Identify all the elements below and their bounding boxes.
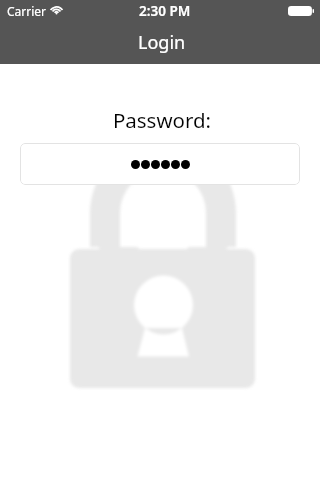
other: Battery full [288, 6, 314, 16]
staticText: Carrier [7, 3, 47, 19]
staticText: Password: [2, 106, 320, 134]
staticText: 2:30 PM [139, 2, 191, 20]
button[interactable] [20, 143, 300, 185]
staticText: Login [138, 30, 186, 55]
